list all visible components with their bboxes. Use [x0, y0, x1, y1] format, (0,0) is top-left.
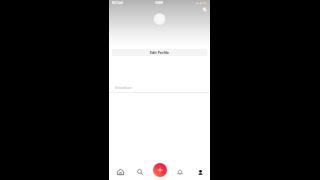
- staticText: Introduce: [115, 85, 132, 90]
- staticText: 10:08: [155, 1, 163, 5]
- button[interactable]: Home: [112, 162, 128, 178]
- button[interactable]: Search: [132, 162, 148, 178]
- button[interactable]: Profile: [192, 162, 208, 178]
- button[interactable]: Edit Profile: [112, 49, 207, 56]
- staticText: Edit Profile: [150, 50, 170, 55]
- button[interactable]: More options: [202, 7, 207, 12]
- staticText: NO Call: [112, 1, 123, 5]
- button[interactable]: Notifications: [172, 162, 188, 178]
- button[interactable]: Add: [152, 162, 168, 178]
